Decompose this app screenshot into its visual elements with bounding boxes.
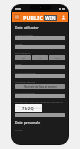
staticText: Titular	[15, 128, 23, 131]
staticText: 7k2Q	[22, 106, 35, 111]
button[interactable]: Numele de fata al mamei	[15, 84, 65, 89]
button[interactable]: Account	[59, 13, 67, 21]
staticText: Introduceti codul de verificare de mai j…	[15, 100, 63, 103]
staticText: Intrebare secreta	[15, 80, 36, 83]
staticText: Parola	[15, 42, 23, 45]
button[interactable]: ZZ	[15, 55, 31, 60]
staticText: WIN	[45, 15, 56, 21]
staticText: Numele de fata al mamei	[24, 85, 57, 89]
staticText: Nume utilizator	[15, 33, 34, 36]
staticText: AAAA	[54, 56, 61, 59]
staticText: ZZ	[22, 56, 25, 59]
staticText: Cod promotional	[15, 91, 35, 94]
staticText: LL	[39, 56, 42, 59]
staticText: Date personale	[15, 120, 41, 125]
button[interactable]: LL	[32, 55, 48, 60]
button[interactable]: AAAA	[49, 55, 65, 60]
staticText: Confirmare email	[15, 71, 36, 74]
staticText: Date utilizator	[15, 25, 39, 30]
staticText: Data nasterii	[15, 51, 30, 54]
staticText: Email	[15, 62, 22, 65]
button[interactable]: Menu	[13, 13, 21, 21]
button[interactable]: Captcha image	[15, 104, 42, 112]
staticText: PUBLIC	[23, 14, 43, 21]
